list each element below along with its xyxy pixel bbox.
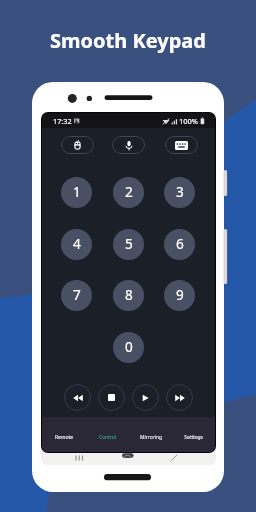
staticText: Mirroring (140, 434, 162, 441)
staticText: Remote (55, 434, 73, 441)
button[interactable]: Voice (112, 136, 145, 154)
button[interactable]: Fast forward (166, 384, 193, 411)
button[interactable]: Remote (42, 417, 86, 452)
staticText: 6 (176, 234, 184, 253)
button[interactable]: Mirroring (129, 417, 172, 452)
staticText: 5 (125, 234, 133, 253)
staticText: 2 (125, 182, 133, 201)
button[interactable]: 6 (164, 229, 195, 260)
button[interactable]: Stop (98, 384, 125, 411)
staticText: 3 (176, 182, 184, 201)
button[interactable]: Rewind (64, 384, 91, 411)
staticText: Smooth Keypad (0, 27, 256, 54)
staticText: 4 (73, 234, 81, 253)
button[interactable]: 0 (113, 332, 144, 363)
button[interactable]: 9 (164, 280, 195, 311)
staticText: Settings (184, 434, 203, 441)
staticText: 7 (73, 285, 81, 304)
button[interactable]: 5 (113, 229, 144, 260)
staticText: 0 (125, 337, 133, 356)
button[interactable]: 2 (113, 177, 144, 208)
button[interactable]: Keyboard (165, 136, 198, 154)
button[interactable]: 7 (61, 280, 92, 311)
button[interactable]: Mouse (61, 136, 94, 154)
staticText: 8 (125, 285, 133, 304)
button[interactable]: 1 (61, 177, 92, 208)
staticText: 9 (176, 285, 184, 304)
button[interactable]: 3 (164, 177, 195, 208)
staticText: 17:32 (53, 116, 72, 126)
button[interactable]: Control (86, 417, 129, 452)
button[interactable]: Play (132, 384, 159, 411)
button[interactable]: 8 (113, 280, 144, 311)
button[interactable]: 4 (61, 229, 92, 260)
staticText: Control (99, 434, 116, 441)
staticText: 1 (73, 182, 81, 201)
button[interactable]: Settings (172, 417, 215, 452)
staticText: 100% (179, 116, 199, 126)
